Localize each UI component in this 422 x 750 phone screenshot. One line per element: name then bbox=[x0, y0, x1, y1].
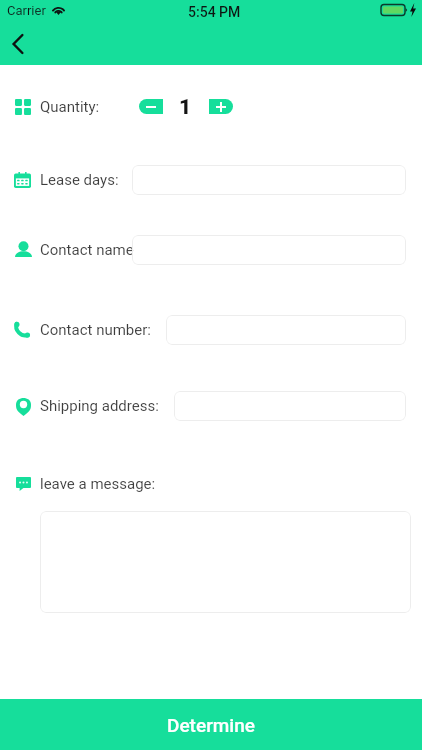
staticText: 5:54 PM bbox=[188, 4, 241, 20]
button[interactable]: Decrease quantity bbox=[139, 99, 163, 114]
button[interactable]: Input field bbox=[166, 315, 406, 345]
button[interactable]: Determine bbox=[0, 699, 422, 750]
staticText: Contact name bbox=[40, 241, 134, 259]
button[interactable]: Increase quantity bbox=[209, 99, 233, 114]
button[interactable]: Input field bbox=[132, 235, 406, 265]
staticText: 1 bbox=[179, 95, 192, 119]
staticText: Carrier bbox=[7, 3, 46, 18]
staticText: Lease days: bbox=[40, 171, 119, 189]
staticText: Quantity: bbox=[40, 98, 100, 116]
button[interactable]: Input field bbox=[174, 391, 406, 421]
button[interactable]: Input field bbox=[132, 165, 406, 195]
staticText: Shipping address: bbox=[40, 397, 159, 415]
staticText: leave a message: bbox=[40, 475, 156, 493]
staticText: Determine bbox=[167, 714, 255, 736]
staticText: Contact number: bbox=[40, 321, 151, 339]
button[interactable]: Back bbox=[0, 22, 40, 66]
